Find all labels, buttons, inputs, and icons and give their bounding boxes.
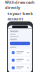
staticText: to your bank account	[7, 11, 32, 21]
button[interactable]: Transaction	[10, 65, 30, 71]
button[interactable]: Transaction	[10, 49, 30, 56]
button[interactable]: Withdraw	[10, 42, 30, 45]
button[interactable]: Transaction	[10, 57, 30, 63]
staticText: Withdraw cash directly	[5, 0, 35, 10]
